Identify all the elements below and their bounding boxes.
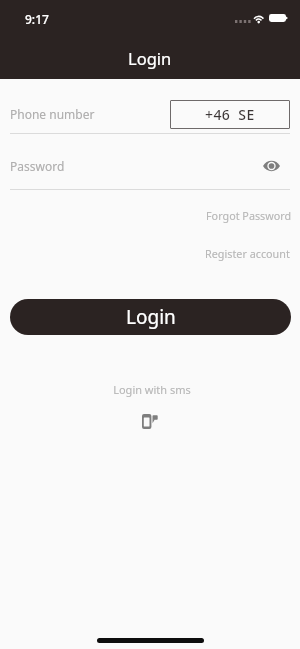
staticText: Password (10, 158, 65, 174)
staticText: Login with sms (113, 382, 191, 397)
staticText: 9:17 (25, 11, 49, 27)
staticText: Login (126, 304, 176, 330)
button[interactable]: Phone number (0, 96, 168, 133)
staticText: Forgot Password (206, 208, 292, 223)
button[interactable]: +46 SE (170, 100, 290, 129)
button[interactable]: Password (0, 148, 254, 189)
staticText: Phone number (10, 106, 95, 122)
button[interactable]: Login with sms (2, 382, 300, 429)
button[interactable]: Forgot Password (198, 204, 300, 227)
button[interactable]: Show password (257, 152, 285, 180)
button[interactable]: Register account (197, 242, 298, 265)
staticText: Register account (205, 246, 290, 261)
staticText: Login (128, 47, 172, 69)
staticText: +46 SE (205, 105, 255, 124)
button[interactable]: Login (10, 299, 291, 335)
